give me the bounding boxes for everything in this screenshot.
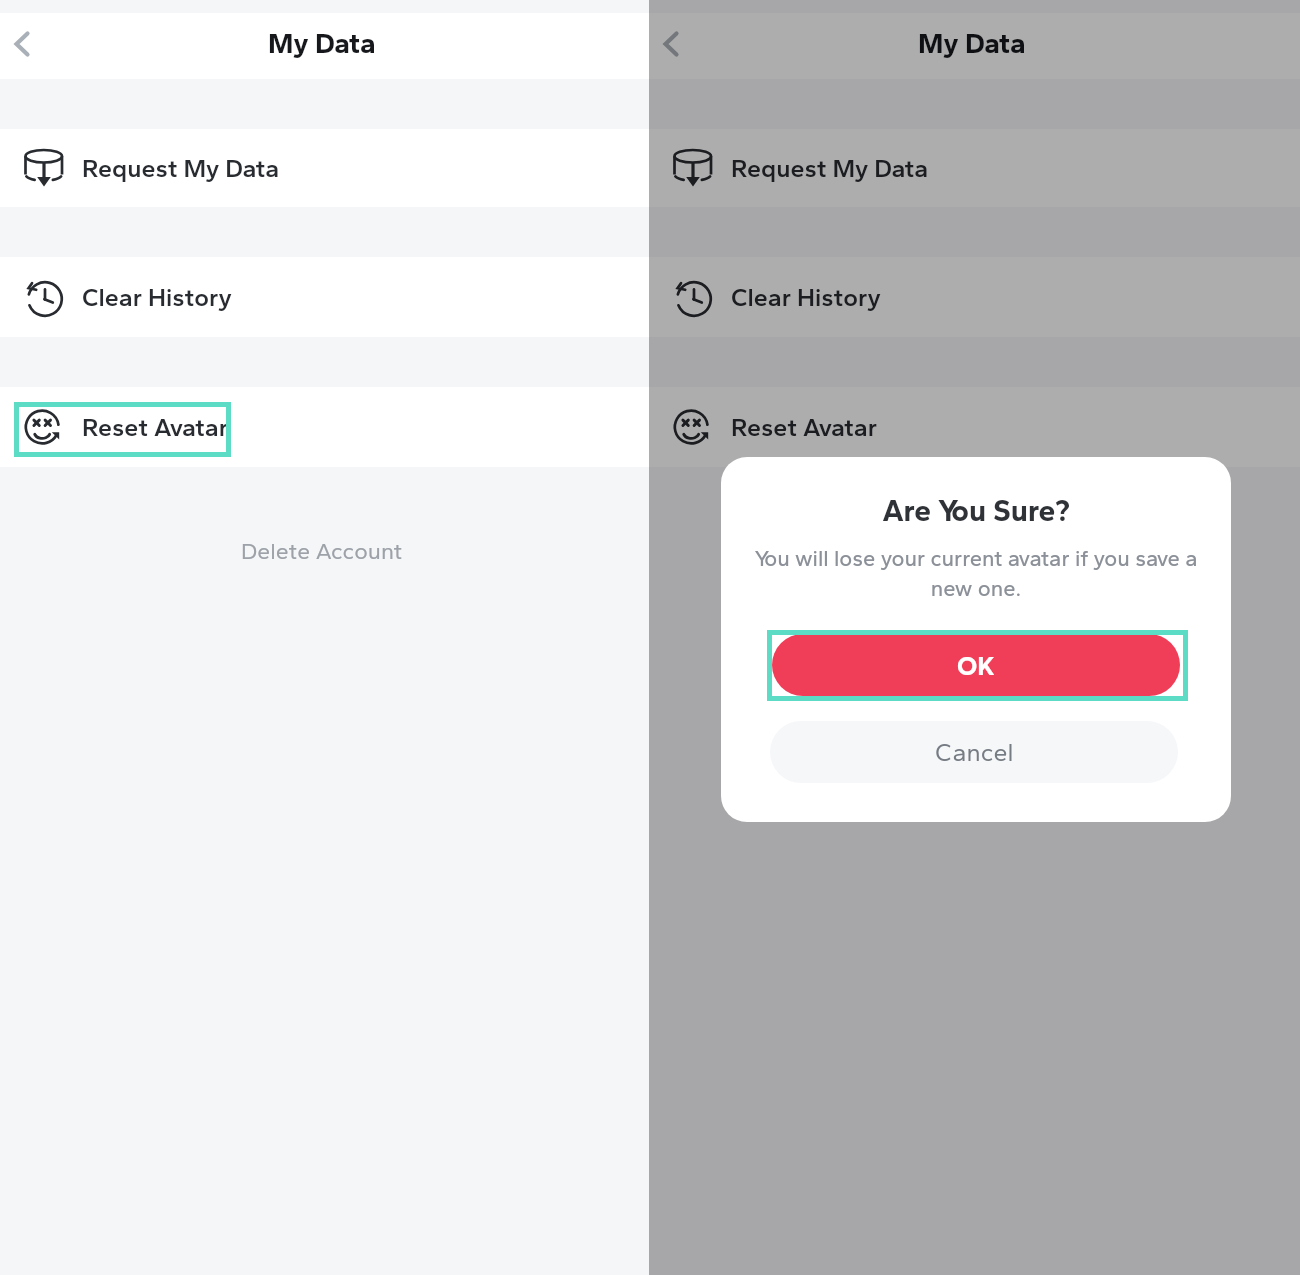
staticText: Clear History: [731, 282, 881, 312]
button[interactable]: Delete Account: [869, 527, 1075, 575]
staticText: Are You Sure?: [721, 492, 1231, 528]
staticText: OK: [957, 650, 995, 681]
staticText: Clear History: [82, 282, 232, 312]
button[interactable]: Delete Account: [219, 527, 425, 575]
staticText: Reset Avatar: [731, 412, 878, 442]
staticText: My Data: [918, 26, 1026, 60]
button[interactable]: Clear History: [0, 257, 649, 337]
button[interactable]: Clear History: [649, 257, 1300, 337]
button[interactable]: Back: [0, 22, 43, 66]
button[interactable]: Reset Avatar: [0, 387, 649, 467]
staticText: Cancel: [935, 737, 1014, 767]
staticText: Delete Account: [241, 537, 403, 565]
staticText: Delete Account: [891, 537, 1053, 565]
staticText: My Data: [268, 26, 376, 60]
button[interactable]: Reset Avatar: [649, 387, 1300, 467]
staticText: Request My Data: [731, 153, 929, 183]
button[interactable]: Back: [648, 22, 692, 66]
button[interactable]: OK: [772, 634, 1180, 696]
button[interactable]: Request My Data: [649, 129, 1300, 207]
staticText: You will lose your current avatar if you…: [751, 545, 1201, 601]
button[interactable]: Request My Data: [0, 129, 649, 207]
staticText: Reset Avatar: [82, 412, 229, 442]
button[interactable]: Cancel: [770, 721, 1178, 783]
staticText: Request My Data: [82, 153, 280, 183]
